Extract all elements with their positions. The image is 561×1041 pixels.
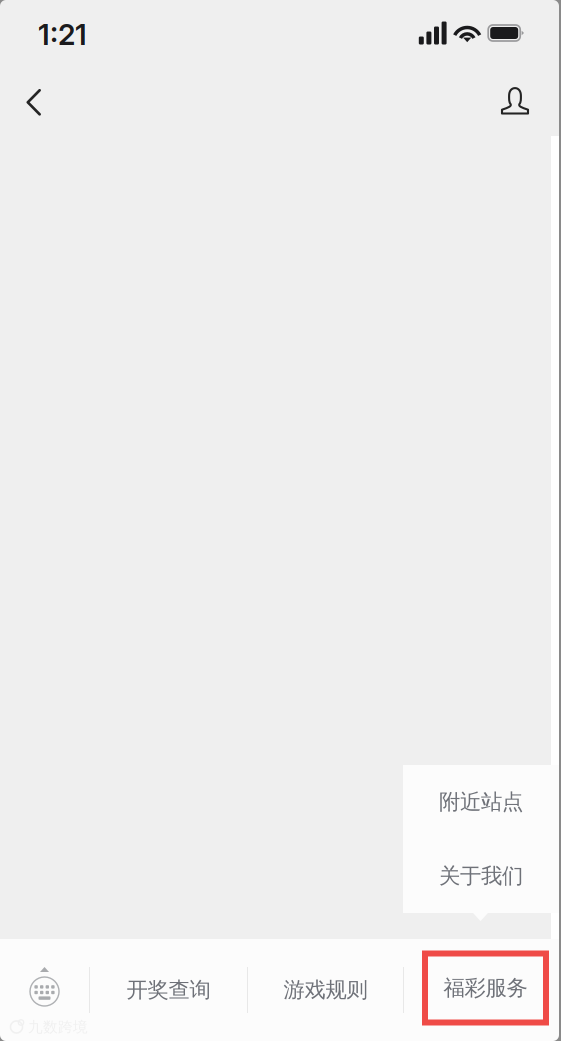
staticText: 附近站点 [439,789,523,815]
button[interactable]: 福彩服务 [419,953,546,1026]
button[interactable]: 游戏规则 [248,939,403,1041]
staticText: 关于我们 [439,863,523,889]
button[interactable]: 附近站点 [403,765,559,839]
staticText: 游戏规则 [283,977,367,1003]
button[interactable]: Profile [488,73,542,129]
button[interactable]: Back [5,73,59,129]
staticText: 九数跨境 [28,1018,88,1036]
button[interactable]: 关于我们 [403,839,559,913]
staticText: 福彩服务 [443,975,527,1001]
button[interactable]: 开奖查询 [90,939,247,1041]
button[interactable]: Keyboard [0,939,89,1041]
staticText: 开奖查询 [126,977,210,1003]
staticText: 1:21 [38,17,87,52]
